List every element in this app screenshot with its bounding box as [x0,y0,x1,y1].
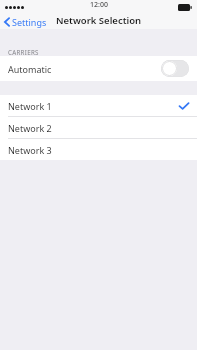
button[interactable]: Automatic carrier selection toggle [161,60,189,77]
staticText: Network 3 [8,144,52,156]
button[interactable]: Network 3 [0,139,197,160]
button[interactable]: Automatic [0,56,197,81]
staticText: Settings [12,16,47,28]
button[interactable]: Network 1 [0,95,197,116]
staticText: Network Selection [56,14,142,27]
button[interactable]: Network 2 [0,117,197,138]
staticText: 12:00 [90,0,108,10]
staticText: CARRIERS [8,48,39,56]
staticText: Network 1 [8,100,52,112]
staticText: Automatic [8,63,52,75]
staticText: Network 2 [8,122,52,134]
other: Selected [179,102,189,110]
button[interactable]: Settings [4,16,65,28]
